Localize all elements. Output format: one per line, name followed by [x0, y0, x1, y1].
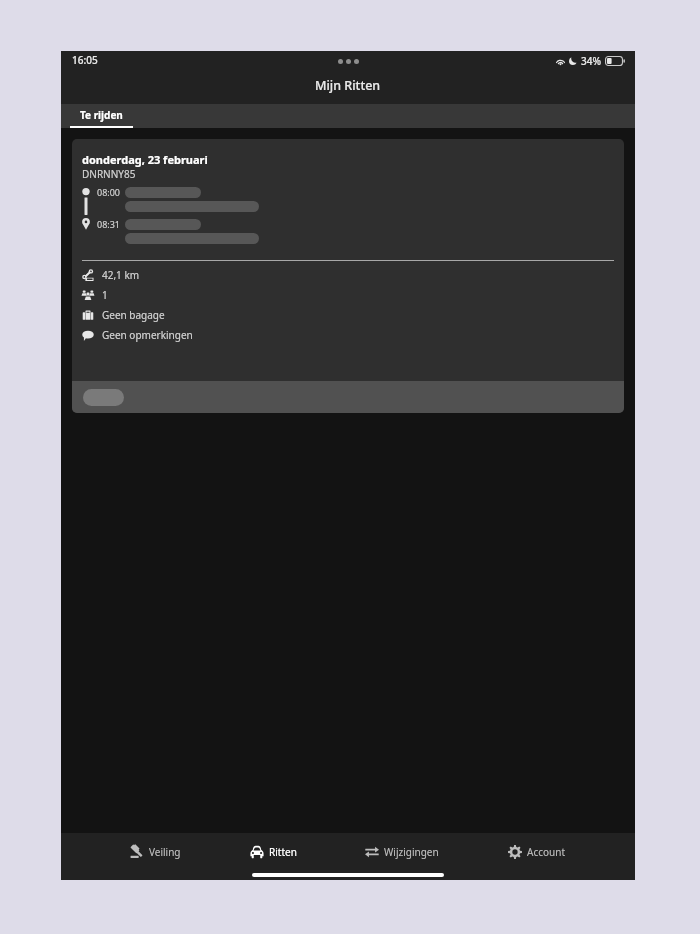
staticText: Ritten — [269, 845, 297, 859]
staticText: Wijzigingen — [384, 845, 439, 859]
staticText: Mijn Ritten — [315, 77, 381, 94]
other: Passengers — [82, 289, 94, 301]
staticText: 42,1 km — [102, 268, 140, 282]
staticText: Geen opmerkingen — [102, 328, 193, 342]
staticText: 34% — [581, 54, 601, 68]
staticText: 16:05 — [72, 53, 98, 67]
button[interactable]: Wijzigingen — [365, 833, 439, 870]
button[interactable] — [72, 381, 624, 413]
other: Remarks — [82, 329, 94, 341]
staticText: Account — [527, 845, 566, 859]
staticText: Geen bagage — [102, 308, 165, 322]
other: Luggage — [82, 309, 94, 321]
button[interactable]: donderdag, 23 februari — [72, 139, 624, 413]
button[interactable]: Account — [508, 833, 566, 870]
staticText: 08:00 — [97, 186, 121, 198]
button[interactable]: Te rijden — [70, 104, 133, 128]
staticText: 08:31 — [97, 218, 121, 230]
staticText: 1 — [102, 288, 108, 302]
staticText: DNRNNY85 — [82, 167, 136, 181]
staticText: donderdag, 23 februari — [82, 152, 208, 167]
staticText: Te rijden — [80, 108, 123, 122]
staticText: Veiling — [149, 845, 181, 859]
button[interactable]: Ritten — [250, 833, 297, 870]
button[interactable]: Veiling — [130, 833, 181, 870]
other: Distance — [82, 269, 94, 281]
